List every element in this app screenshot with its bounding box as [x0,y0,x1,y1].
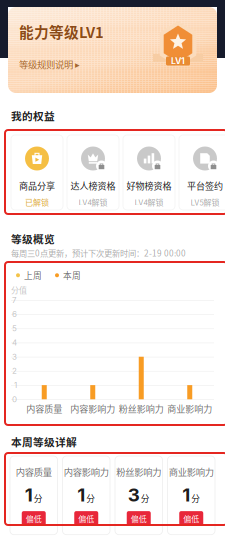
staticText: 商业影响力 [169,465,214,478]
staticText: 等级概览 [11,231,55,246]
staticText: 上周 [24,269,42,281]
staticText: LV5解锁 [190,196,219,208]
staticText: 分 [86,492,95,505]
staticText: 3 [12,352,17,362]
staticText: 6 [12,309,17,319]
staticText: 本周 [63,269,81,281]
staticText: 1 [14,380,17,390]
staticText: 好物榜资格 [126,179,171,192]
button[interactable]: 平台签约 [179,135,225,210]
staticText: LV1 [171,56,185,66]
staticText: 4 [12,338,17,347]
staticText: 1 [77,483,85,506]
staticText: 0 [12,394,17,404]
staticText: 我的权益 [11,108,55,123]
staticText: 平台签约 [187,179,223,192]
staticText: 内容质量 [26,402,62,415]
staticText: 本周等级详解 [11,434,77,449]
staticText: 已解锁 [25,196,49,208]
button[interactable]: 等级规则说明 ▸ [19,57,80,71]
staticText: 粉丝影响力 [119,402,164,415]
staticText: 分 [191,492,200,505]
staticText: 商品分享 [19,179,55,192]
staticText: 分值 [11,284,27,296]
staticText: 偏低 [131,513,147,524]
staticText: 内容影响力 [64,465,109,478]
staticText: LV4解锁 [134,196,163,208]
button[interactable]: 商品分享 [11,135,63,210]
staticText: 商业影响力 [167,402,212,415]
staticText: 偏低 [183,513,199,524]
staticText: 能力等级LV1 [19,21,104,42]
staticText: 达人榜资格 [70,179,115,192]
staticText: 1 [182,483,190,506]
staticText: LV4解锁 [78,196,107,208]
staticText: 内容质量 [16,465,52,478]
staticText: 分 [141,492,150,505]
button[interactable]: 好物榜资格 [123,135,175,210]
staticText: 3 [128,483,140,506]
staticText: 等级规则说明 ▸ [19,57,80,71]
staticText: 2 [12,366,17,376]
staticText: 5 [12,323,17,333]
staticText: 内容影响力 [70,402,115,415]
staticText: 1 [25,483,33,506]
staticText: 7 [12,295,17,305]
staticText: 偏低 [26,513,42,524]
staticText: 偏低 [78,513,94,524]
staticText: 粉丝影响力 [116,465,161,478]
button[interactable]: 达人榜资格 [67,135,119,210]
staticText: 分 [34,492,43,505]
staticText: 每周三0点更新，预计下次更新时间：2-19 00:00 [11,247,186,259]
